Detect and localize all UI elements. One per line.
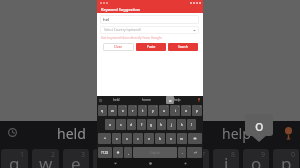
staticText: 9 [261, 150, 266, 160]
button[interactable]: r [128, 105, 137, 116]
button[interactable]: u [159, 105, 169, 116]
staticText: o [169, 98, 172, 103]
button[interactable]: t [138, 105, 147, 116]
button[interactable]: o [166, 96, 174, 104]
button[interactable]: n [166, 133, 176, 144]
staticText: 5 [145, 105, 147, 108]
button[interactable]: Paste [136, 43, 166, 51]
staticText: 1 [105, 105, 107, 108]
button[interactable]: , [124, 147, 132, 158]
staticText: 7 [167, 105, 169, 108]
staticText: Paste [147, 45, 156, 49]
staticText: m [180, 136, 184, 141]
staticText: 5 [141, 150, 146, 160]
staticText: e [71, 152, 81, 168]
staticText: 0 [291, 150, 296, 160]
button[interactable]: i [170, 105, 180, 116]
button[interactable]: q [98, 105, 107, 116]
staticText: 0 [200, 105, 202, 108]
button[interactable]: Recents [168, 158, 203, 168]
button[interactable]: Search [168, 43, 198, 51]
staticText: 2 [115, 105, 117, 108]
button[interactable]: Select Country (optional) [100, 26, 199, 34]
staticText: held [57, 124, 86, 143]
staticText: o [185, 108, 188, 113]
button[interactable]: Home [133, 158, 168, 168]
button[interactable]: hel [100, 15, 199, 24]
staticText: 8 [178, 105, 180, 108]
staticText: Search [178, 45, 189, 49]
staticText: d [130, 122, 133, 127]
staticText: 1 [20, 150, 25, 160]
staticText: n [170, 136, 173, 141]
button[interactable]: h [157, 119, 166, 130]
staticText: help [174, 98, 181, 102]
staticText: o [251, 152, 262, 168]
staticText: 6 [156, 105, 158, 108]
button[interactable]: d [127, 119, 136, 130]
button[interactable]: Close [103, 43, 134, 51]
button[interactable]: Backspace [188, 133, 202, 144]
staticText: 9 [189, 105, 191, 108]
staticText: b [159, 136, 162, 141]
staticText: w [111, 108, 114, 113]
staticText: w [39, 152, 53, 168]
staticText: f [141, 122, 143, 127]
button[interactable]: l [187, 119, 196, 130]
staticText: help [222, 124, 251, 143]
staticText: x [126, 136, 128, 141]
button[interactable]: j [167, 119, 176, 130]
staticText: a [109, 122, 111, 127]
button[interactable]: f [137, 119, 146, 130]
staticText: o [255, 116, 264, 135]
staticText: k [181, 122, 183, 127]
button[interactable]: s [116, 119, 126, 130]
staticText: 4 [135, 105, 137, 108]
staticText: g [150, 122, 153, 127]
staticText: y [162, 152, 171, 168]
staticText: e [122, 108, 124, 113]
button[interactable]: o [181, 105, 191, 116]
staticText: i [224, 152, 229, 168]
button[interactable]: . [178, 147, 186, 158]
button[interactable]: c [133, 133, 143, 144]
staticText: u [163, 108, 166, 113]
button[interactable]: v [144, 133, 154, 144]
button[interactable]: Emoji [113, 147, 123, 158]
staticText: 3 [125, 105, 127, 108]
staticText: 6 [171, 150, 176, 160]
staticText: p [281, 152, 292, 168]
button[interactable]: e [118, 105, 127, 116]
staticText: Keyword Suggestion [101, 7, 141, 12]
staticText: held [113, 98, 120, 102]
button[interactable]: w [108, 105, 117, 116]
staticText: 3 [81, 150, 86, 160]
staticText: t [142, 108, 144, 113]
staticText: q [9, 152, 20, 168]
staticText: , [128, 150, 129, 155]
staticText: Close [114, 45, 123, 49]
button[interactable]: Shift [98, 133, 111, 144]
staticText: r [132, 108, 134, 113]
button[interactable]: m [177, 133, 187, 144]
button[interactable]: Back [97, 158, 133, 168]
button[interactable]: z [112, 133, 121, 144]
button[interactable]: b [155, 133, 165, 144]
button[interactable]: p [192, 105, 202, 116]
staticText: r [102, 152, 110, 168]
staticText: home [142, 98, 151, 102]
button[interactable]: ?123 [98, 147, 112, 158]
staticText: j [171, 122, 172, 127]
staticText: t [133, 152, 140, 168]
button[interactable]: Enter [187, 147, 202, 158]
button[interactable]: g [147, 119, 156, 130]
staticText: c [137, 136, 139, 141]
staticText: z [116, 136, 118, 141]
button[interactable]: k [177, 119, 186, 130]
button[interactable]: x [122, 133, 132, 144]
button[interactable]: y [148, 105, 158, 116]
staticText: 4 [111, 150, 116, 160]
button[interactable]: a [105, 119, 115, 130]
staticText: . [182, 150, 183, 155]
